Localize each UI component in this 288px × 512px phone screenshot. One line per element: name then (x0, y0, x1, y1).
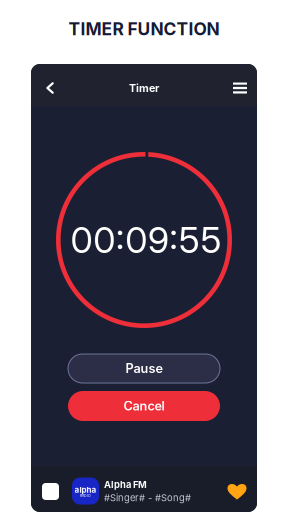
button[interactable]: Back (35, 73, 65, 103)
button[interactable]: Cancel (68, 391, 220, 421)
staticText: Timer (129, 81, 159, 94)
staticText: Cancel (123, 398, 164, 414)
staticText: Alpha FM (104, 479, 147, 490)
staticText: 00:09:55 (71, 218, 221, 262)
staticText: Pause (125, 361, 162, 376)
button[interactable]: Menu (225, 73, 255, 103)
staticText: TIMER FUNCTION (68, 18, 219, 39)
button[interactable]: Favorite (227, 482, 247, 500)
staticText: #Singer# - #Song# (104, 492, 191, 504)
staticText: RADIO (80, 494, 91, 498)
button[interactable]: Pause (68, 354, 220, 383)
button[interactable]: Stop (42, 483, 59, 500)
staticText: alpha (74, 485, 96, 495)
